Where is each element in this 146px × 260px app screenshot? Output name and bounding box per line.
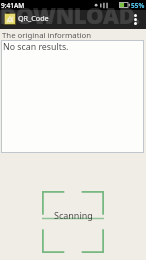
button[interactable]: More options <box>126 10 145 29</box>
staticText: 9:41AM <box>1 1 25 10</box>
staticText: 55% <box>131 1 145 10</box>
staticText: Scanning <box>54 209 93 221</box>
staticText: DOWNLOAD.APK <box>0 0 146 29</box>
staticText: The original information <box>2 30 92 41</box>
staticText: QR_Code <box>18 13 49 23</box>
staticText: No scan results. <box>3 41 69 53</box>
